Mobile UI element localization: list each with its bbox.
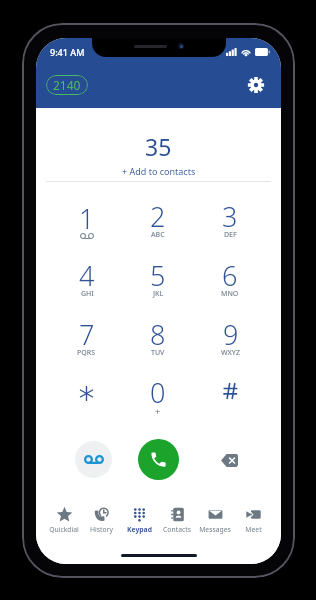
staticText: 7 [79, 316, 95, 353]
button[interactable]: Call [138, 439, 179, 480]
button[interactable]: 0 [122, 373, 194, 432]
staticText: Keypad [127, 525, 152, 534]
staticText: DEF [224, 230, 237, 240]
button[interactable]: 5 [122, 255, 194, 314]
button[interactable]: Messages [196, 500, 234, 540]
button[interactable]: 4 [51, 255, 122, 314]
button[interactable]: 8 [122, 314, 194, 373]
button[interactable]: 1 [51, 196, 122, 255]
staticText: ABC [151, 230, 165, 240]
button[interactable]: Voicemail [75, 441, 112, 478]
staticText: Messages [199, 525, 231, 534]
staticText: Quickdial [49, 525, 79, 534]
staticText: 2140 [53, 77, 81, 93]
button[interactable]: Contacts [158, 500, 196, 540]
button[interactable]: History [82, 500, 120, 540]
staticText: 0 [150, 374, 166, 411]
staticText: 1 [79, 200, 95, 237]
staticText: 8 [150, 316, 166, 353]
staticText: 4 [79, 257, 95, 294]
staticText: WXYZ [221, 348, 240, 358]
staticText: 35 [145, 131, 172, 162]
staticText: 3 [222, 198, 238, 235]
staticText: + Add to contacts [122, 165, 196, 177]
staticText: 9:41 AM [50, 46, 85, 58]
button[interactable]: Meet [234, 500, 272, 540]
button[interactable]: + Add to contacts [114, 164, 204, 178]
button[interactable]: 6 [194, 255, 266, 314]
staticText: MNO [221, 289, 239, 299]
button[interactable] [51, 373, 122, 432]
button[interactable]: Keypad [120, 500, 158, 540]
staticText: JKL [153, 289, 164, 299]
button[interactable]: 2 [122, 196, 194, 255]
button[interactable]: Settings [242, 71, 270, 99]
staticText: Contacts [163, 525, 191, 534]
staticText: Meet [245, 525, 262, 534]
button[interactable]: Backspace [214, 445, 244, 475]
button[interactable] [194, 373, 266, 432]
staticText: 9 [223, 316, 239, 353]
staticText: PQRS [77, 348, 96, 358]
staticText: + [155, 405, 161, 417]
staticText: GHI [81, 289, 94, 299]
button[interactable]: 2140 [46, 75, 88, 95]
staticText: 2 [150, 198, 166, 235]
staticText: TUV [151, 348, 165, 358]
button[interactable]: 3 [194, 196, 266, 255]
staticText: History [90, 525, 113, 534]
staticText: 6 [222, 257, 238, 294]
button[interactable]: 7 [51, 314, 122, 373]
button[interactable]: 9 [194, 314, 266, 373]
button[interactable]: Quickdial [45, 500, 82, 540]
staticText: 5 [150, 257, 166, 294]
